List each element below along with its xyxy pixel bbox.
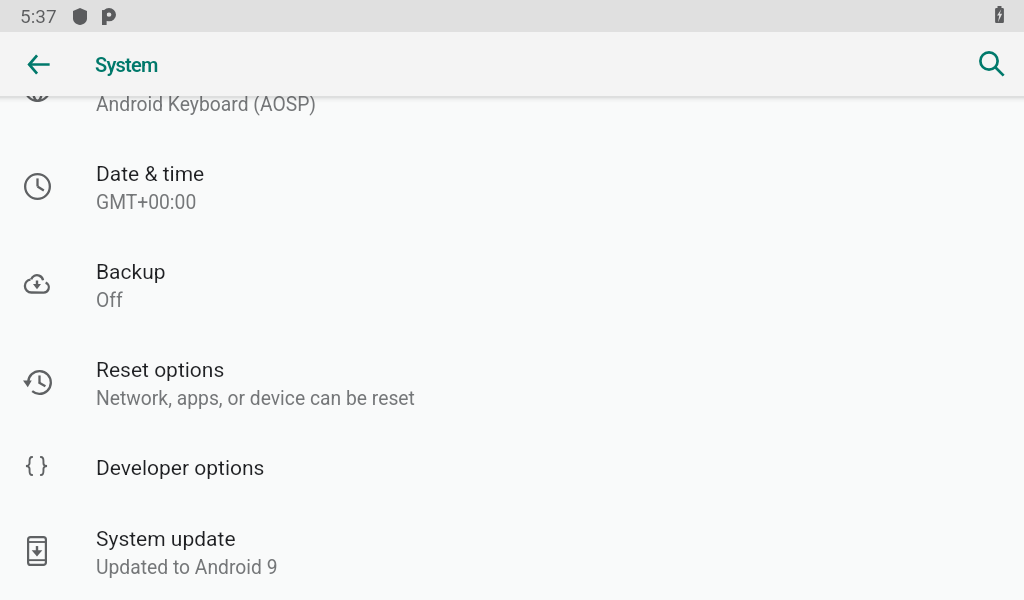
button[interactable]: Developer options — [0, 434, 1024, 505]
button[interactable]: Backup — [0, 238, 1024, 336]
button[interactable]: Languages & input — [0, 96, 1024, 140]
staticText: Date & time — [96, 162, 205, 187]
staticText: System — [95, 53, 158, 76]
staticText: 5:37 — [20, 5, 57, 27]
button[interactable]: Search — [968, 40, 1016, 88]
button[interactable]: Reset options — [0, 336, 1024, 434]
button[interactable]: Date & time — [0, 140, 1024, 238]
staticText: Reset options — [96, 358, 225, 383]
staticText: Updated to Android 9 — [96, 556, 278, 579]
staticText: Android Keyboard (AOSP) — [96, 96, 317, 116]
button[interactable]: System update — [0, 505, 1024, 600]
button[interactable]: Navigate up — [15, 40, 63, 88]
staticText: Developer options — [96, 456, 265, 481]
staticText: Network, apps, or device can be reset — [96, 387, 415, 410]
staticText: Backup — [96, 260, 166, 285]
staticText: Off — [96, 289, 123, 312]
staticText: GMT+00:00 — [96, 191, 197, 214]
staticText: System update — [96, 527, 236, 552]
